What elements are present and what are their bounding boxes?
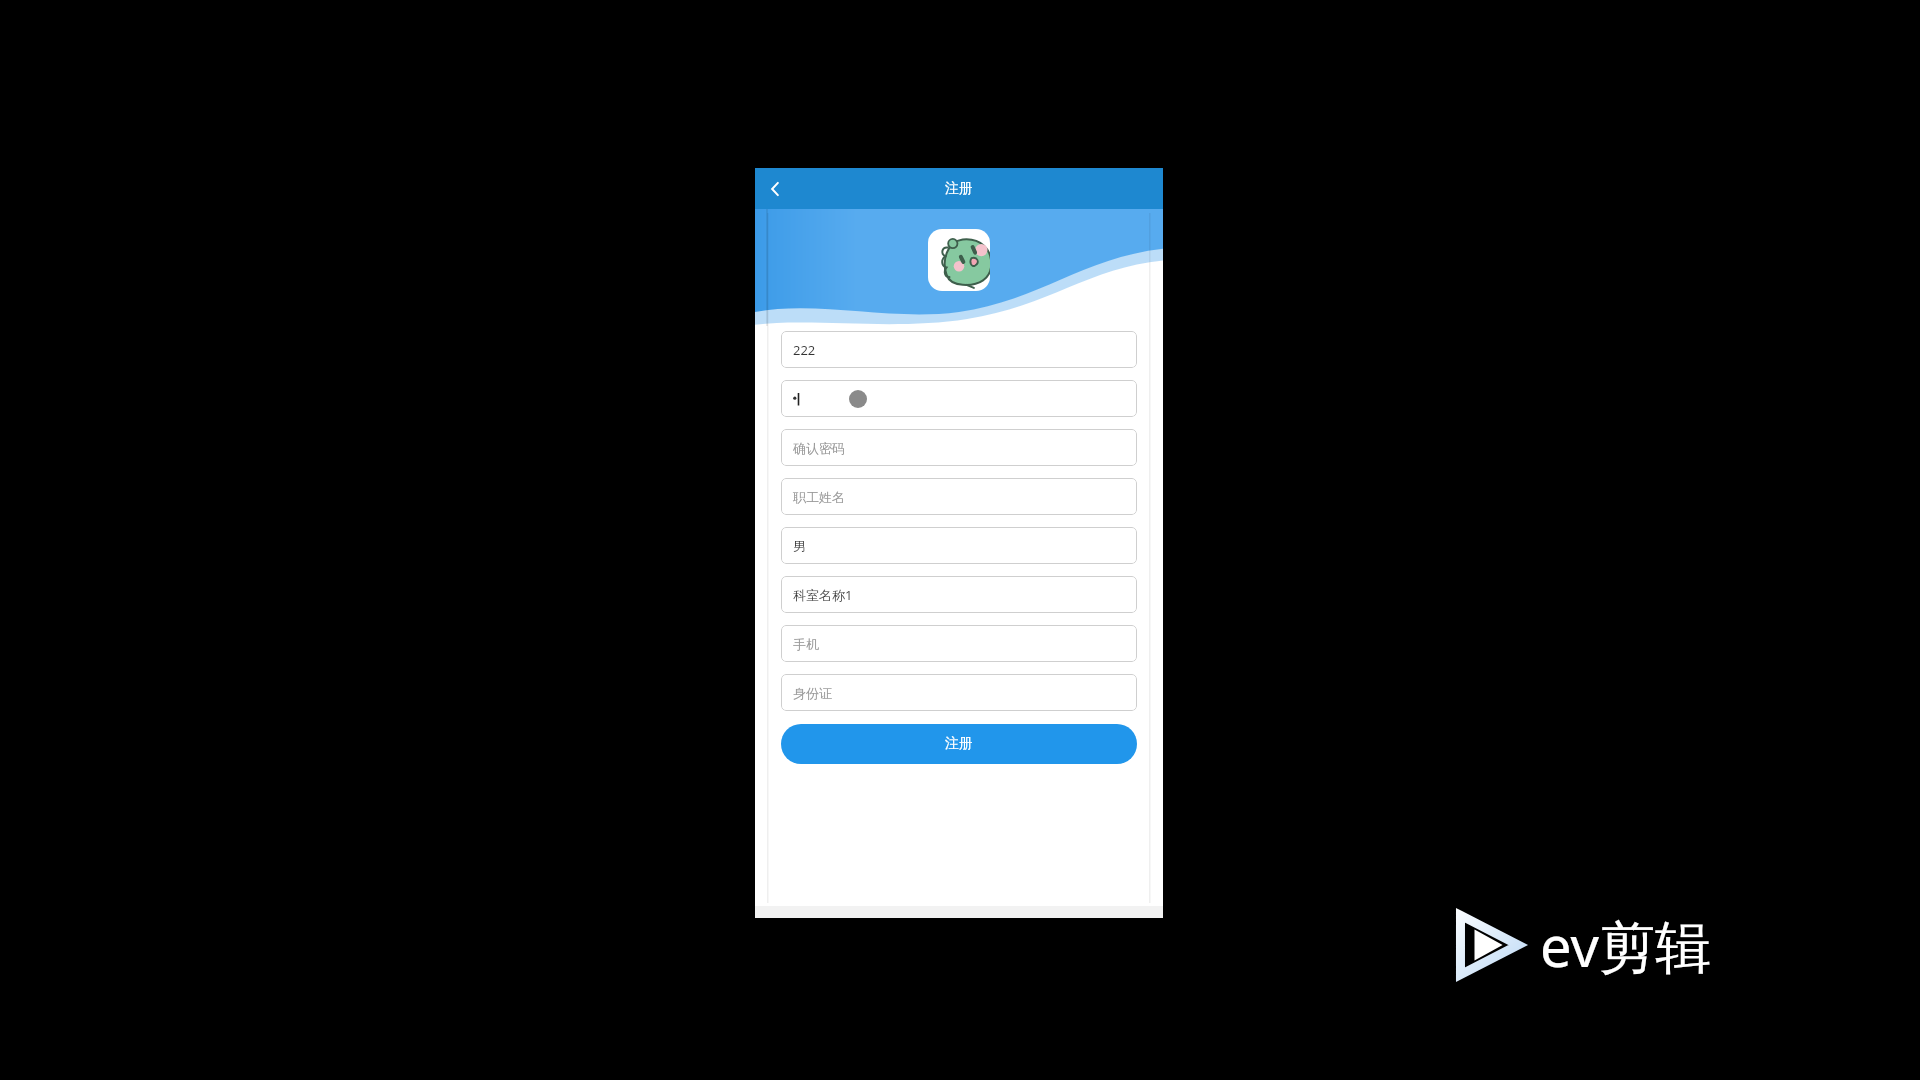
button[interactable]: Back xyxy=(755,169,795,209)
staticText: 职工姓名 xyxy=(793,489,845,505)
staticText: 注册 xyxy=(945,180,973,198)
button[interactable]: 身份证 xyxy=(781,674,1137,711)
staticText: 手机 xyxy=(793,636,819,652)
staticText: 222 xyxy=(793,341,816,359)
button[interactable]: 222 xyxy=(781,331,1137,368)
button[interactable]: 男 xyxy=(781,527,1137,564)
staticText: 科室名称1 xyxy=(793,586,853,604)
button[interactable]: 科室名称1 xyxy=(781,576,1137,613)
staticText: 确认密码 xyxy=(793,440,845,456)
button[interactable] xyxy=(781,380,1137,417)
button[interactable]: 职工姓名 xyxy=(781,478,1137,515)
button[interactable]: Avatar xyxy=(928,229,990,291)
staticText: ev剪辑 xyxy=(1540,907,1711,983)
button[interactable]: 确认密码 xyxy=(781,429,1137,466)
staticText: 注册 xyxy=(945,735,973,753)
button[interactable]: 手机 xyxy=(781,625,1137,662)
button[interactable]: 注册 xyxy=(781,724,1137,764)
staticText: 男 xyxy=(793,538,806,554)
staticText: 身份证 xyxy=(793,685,832,701)
